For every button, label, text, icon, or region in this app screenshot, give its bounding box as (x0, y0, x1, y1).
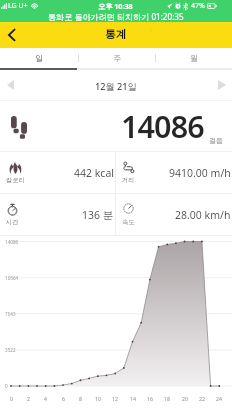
staticText: 7043 (5, 311, 16, 317)
staticText: 10564 (5, 275, 19, 281)
staticText: 12 (112, 395, 118, 402)
button[interactable]: 월 (155, 48, 232, 68)
staticText: 10 (95, 395, 101, 402)
button[interactable]: 거리 (116, 152, 232, 193)
staticText: 20 (182, 395, 188, 402)
staticText: 통계 (105, 28, 127, 42)
staticText: 0 (5, 383, 8, 389)
button[interactable]: 시간 (0, 194, 115, 235)
staticText: 시간 (6, 218, 19, 226)
staticText: 14086 (121, 105, 204, 147)
button[interactable]: 속도 (116, 194, 232, 235)
staticText: 오후 10:38 (98, 1, 133, 11)
staticText: 일 (35, 53, 43, 63)
staticText: 24 (216, 395, 222, 402)
staticText: 6 (62, 395, 65, 402)
staticText: 월 (190, 53, 198, 63)
button[interactable]: Back (0, 22, 23, 48)
staticText: 442 kcal (74, 166, 114, 180)
button[interactable]: 주 (78, 48, 155, 68)
staticText: 9410.00 m/h (169, 166, 231, 180)
staticText: 22 (199, 395, 205, 402)
staticText: 2 (27, 395, 30, 402)
staticText: 3522 (5, 347, 16, 353)
staticText: 주 (113, 53, 121, 63)
staticText: 8 (79, 395, 82, 402)
button[interactable]: 칼로리 (0, 152, 115, 193)
staticText: 속도 (122, 218, 135, 226)
staticText: 136 분 (82, 208, 114, 222)
staticText: 47% (191, 1, 205, 11)
staticText: 0 (10, 395, 13, 402)
staticText: 통화로 돌아가려면 터치하기 01:20:35 (48, 11, 184, 22)
staticText: 걸음 (209, 136, 223, 145)
staticText: 18 (164, 395, 170, 402)
button[interactable]: Previous day (0, 70, 26, 100)
staticText: 거리 (122, 176, 135, 184)
staticText: 16 (147, 395, 153, 402)
button[interactable]: Next day (206, 70, 232, 100)
staticText: 14 (130, 395, 136, 402)
staticText: 12월 21일 (95, 80, 137, 93)
staticText: 4 (44, 395, 47, 402)
button[interactable]: 일 (0, 48, 78, 68)
staticText: LG U+ (8, 1, 28, 11)
staticText: 14086 (5, 239, 19, 245)
staticText: 28.00 km/h (175, 208, 231, 222)
staticText: 칼로리 (6, 176, 25, 184)
button[interactable]: 통화로 돌아가려면 터치하기 01:20:35 (0, 11, 232, 22)
